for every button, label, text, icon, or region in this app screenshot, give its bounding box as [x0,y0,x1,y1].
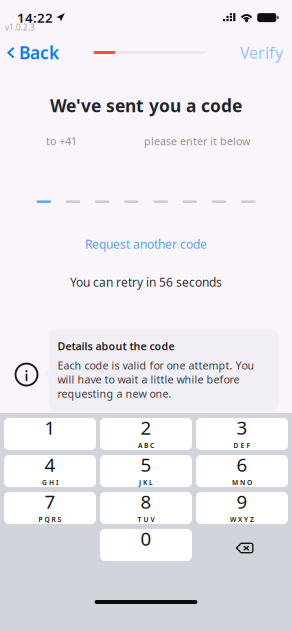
staticText: 0 [140,526,151,551]
staticText: 4 [44,452,55,477]
staticText: to +41 [46,134,77,148]
staticText: 3 [236,415,247,440]
button[interactable]: 7 [4,492,96,524]
button[interactable]: 0 [100,529,192,561]
button[interactable]: 8 [100,492,192,524]
staticText: 6 [236,452,247,477]
staticText: You can retry in 56 seconds [70,274,222,290]
staticText: Verify [240,42,283,63]
staticText: Details about the code [58,339,175,353]
staticText: P Q R S [38,515,61,524]
staticText: D E F [233,441,250,450]
button[interactable]: Verify [240,38,292,67]
staticText: Request another code [85,236,207,252]
staticText: 14:22 [17,9,53,26]
button[interactable]: Back [0,37,59,68]
staticText: 1 [44,415,55,440]
staticText: please enter it below [144,134,250,148]
staticText: v1.0.2.3 [5,22,35,33]
staticText: M N O [232,478,252,487]
button[interactable]: 5 [100,455,192,487]
staticText: T U V [137,515,154,524]
staticText: 5 [140,452,151,477]
button[interactable]: 3 [196,418,288,450]
staticText: J K L [139,478,153,487]
staticText: 7 [44,489,55,514]
staticText: 9 [236,489,247,514]
staticText: G H I [42,478,58,487]
staticText: W X Y Z [230,515,254,524]
button[interactable]: Delete [196,529,288,561]
staticText: A B C [138,441,154,450]
staticText: 2 [140,415,151,440]
button[interactable]: 2 [100,418,192,450]
staticText: Back [19,41,59,64]
staticText: 8 [140,489,151,514]
button[interactable]: 4 [4,455,96,487]
button[interactable]: 9 [196,492,288,524]
staticText: Each code is valid for one attempt. You … [58,358,255,401]
button[interactable]: 1 [4,418,96,450]
staticText: We've sent you a code [50,94,242,117]
button[interactable]: 6 [196,455,288,487]
button[interactable]: Request another code [85,233,207,255]
